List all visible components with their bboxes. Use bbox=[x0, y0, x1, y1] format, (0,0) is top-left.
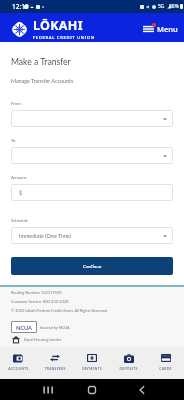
staticText: Amount bbox=[11, 175, 27, 180]
staticText: Continue bbox=[83, 264, 102, 269]
button[interactable]: Menu bbox=[143, 24, 178, 34]
staticText: Immediate (One Time) bbox=[19, 233, 71, 239]
staticText: $ bbox=[19, 190, 23, 196]
staticText: 12:19 bbox=[12, 2, 29, 11]
staticText: Menu bbox=[157, 24, 178, 34]
staticText: CARDS bbox=[159, 367, 172, 371]
staticText: ACCOUNTS bbox=[8, 367, 29, 371]
staticText: 5G bbox=[158, 3, 165, 10]
button[interactable]: ACCOUNTS bbox=[0, 346, 36, 378]
staticText: Routing Number: 321379190 bbox=[11, 290, 62, 295]
staticText: PAYMENTS bbox=[82, 367, 102, 371]
staticText: To bbox=[11, 138, 16, 143]
staticText: Insured by NCUA bbox=[40, 325, 70, 330]
button[interactable] bbox=[11, 110, 173, 127]
button[interactable]: $ bbox=[11, 184, 173, 201]
button[interactable]: PAYMENTS bbox=[73, 346, 110, 378]
button[interactable]: Continue bbox=[11, 257, 173, 275]
staticText: © 2025 Lōkahi Federal Credit Union. All … bbox=[11, 308, 108, 313]
button[interactable]: TRANSFERS bbox=[36, 346, 73, 378]
staticText: DEPOSITS bbox=[119, 367, 138, 371]
button[interactable] bbox=[11, 147, 173, 164]
staticText: Make a Transfer bbox=[11, 57, 71, 67]
button[interactable]: Lokahi Federal Credit Union home bbox=[10, 17, 95, 41]
button[interactable]: DEPOSITS bbox=[110, 346, 147, 378]
staticText: Customer Service: 800-432-4328 bbox=[11, 299, 69, 304]
staticText: TRANSFERS bbox=[44, 367, 66, 371]
button[interactable]: Manage Transfer Accounts bbox=[11, 78, 74, 84]
staticText: From bbox=[11, 101, 21, 106]
staticText: FEDERAL CREDIT UNION bbox=[33, 35, 95, 41]
staticText: LŌKAHI bbox=[33, 17, 83, 34]
button[interactable]: Immediate (One Time) bbox=[11, 227, 173, 244]
button[interactable]: CARDS bbox=[147, 346, 184, 378]
staticText: 88% bbox=[169, 3, 179, 10]
staticText: NCUA bbox=[16, 324, 32, 331]
staticText: Schedule bbox=[11, 218, 29, 223]
staticText: Equal Housing Lender bbox=[24, 337, 62, 342]
